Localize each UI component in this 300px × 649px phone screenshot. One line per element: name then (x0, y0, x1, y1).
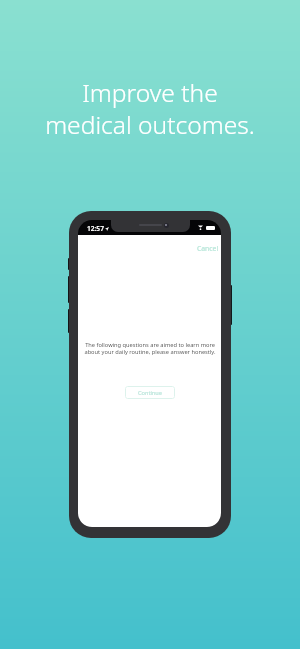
staticText: Continue (138, 389, 162, 397)
button[interactable]: Continue (125, 386, 175, 399)
button[interactable]: Cancel (197, 244, 219, 253)
staticText: The following questions are aimed to lea… (84, 341, 216, 356)
staticText: 12:57 (87, 224, 104, 233)
staticText: Cancel (197, 244, 219, 253)
staticText: Improve the medical outcomes. (0, 76, 300, 141)
